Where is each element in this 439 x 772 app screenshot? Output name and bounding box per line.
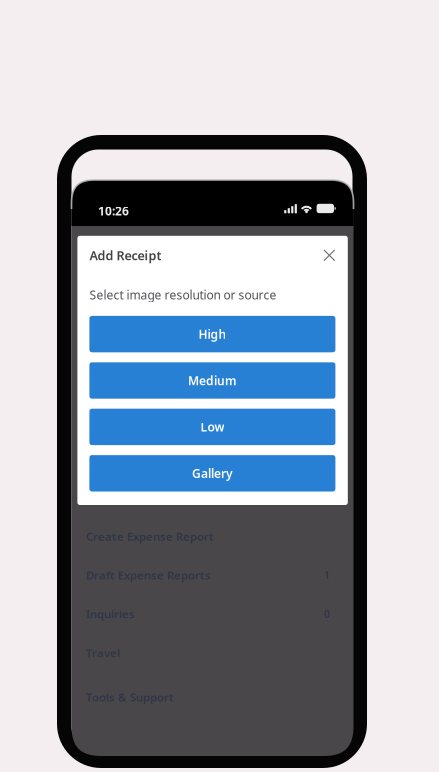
- staticText: Low: [200, 419, 224, 435]
- staticText: Travel: [86, 645, 120, 660]
- button[interactable]: Inquiries: [86, 594, 330, 633]
- staticText: Gallery: [192, 465, 233, 481]
- button[interactable]: Create Expense Report: [86, 517, 330, 556]
- staticText: Select image resolution or source: [89, 287, 276, 303]
- staticText: Create Expense Report: [86, 528, 214, 544]
- button[interactable]: Gallery: [89, 455, 335, 491]
- staticText: High: [198, 326, 226, 342]
- button[interactable]: High: [89, 316, 335, 352]
- staticText: Add Receipt: [89, 247, 161, 264]
- button[interactable]: Draft Expense Reports: [86, 556, 330, 594]
- staticText: Tools & Support: [86, 689, 174, 705]
- staticText: 10:26: [98, 203, 129, 219]
- button[interactable]: Close: [323, 249, 335, 261]
- button[interactable]: Tools & Support: [86, 678, 330, 716]
- staticText: Inquiries: [86, 606, 135, 622]
- staticText: 1: [324, 568, 330, 582]
- staticText: Draft Expense Reports: [86, 567, 211, 583]
- button[interactable]: Medium: [89, 362, 335, 399]
- staticText: Medium: [188, 372, 237, 389]
- staticText: 0: [324, 607, 330, 621]
- button[interactable]: Low: [89, 409, 335, 445]
